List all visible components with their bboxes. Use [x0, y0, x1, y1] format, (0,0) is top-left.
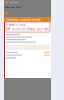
staticText: Order confirmed [7, 17, 41, 22]
staticText: We could not charge your card [7, 27, 49, 31]
staticText: Payment issue [7, 23, 26, 26]
